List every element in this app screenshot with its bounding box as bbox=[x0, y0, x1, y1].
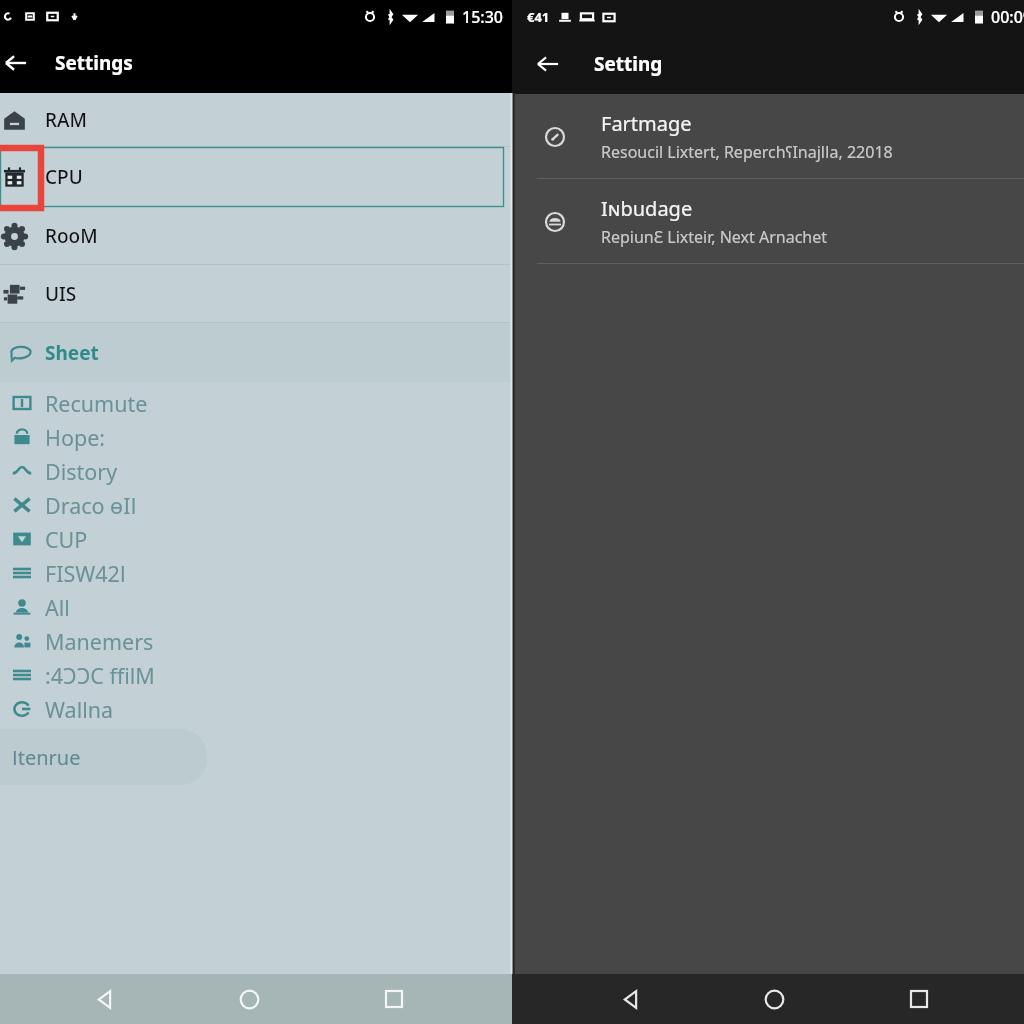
staticText: Sheet bbox=[45, 340, 99, 366]
staticText: CPU bbox=[45, 164, 83, 190]
staticText: Resoucil Lixtert, ReperchʕInajlІa, 22018 bbox=[601, 141, 893, 163]
button[interactable]: :4ƆƆC ffilM bbox=[0, 658, 512, 692]
staticText: Settings bbox=[55, 50, 133, 76]
button[interactable]: Fartmage bbox=[512, 94, 1024, 179]
button[interactable]: Manemers bbox=[0, 624, 512, 658]
staticText: 15:30 bbox=[462, 6, 503, 28]
staticText: Setting bbox=[594, 51, 663, 77]
staticText: Draco өIІ bbox=[45, 491, 137, 520]
staticText: Іtenrue bbox=[12, 744, 81, 771]
button[interactable]: Recents bbox=[899, 979, 939, 1019]
button[interactable]: Back bbox=[2, 49, 30, 77]
button[interactable]: All bbox=[0, 590, 512, 624]
button[interactable]: Wallna bbox=[0, 692, 512, 726]
staticText: Distory bbox=[45, 457, 118, 486]
button[interactable]: Back bbox=[611, 979, 651, 1019]
staticText: Wallna bbox=[45, 695, 114, 724]
button[interactable]: RooM bbox=[0, 207, 512, 265]
button[interactable]: Іtenrue bbox=[0, 729, 207, 785]
button[interactable]: Home bbox=[229, 979, 269, 1019]
staticText: FISW42І bbox=[45, 559, 126, 588]
button[interactable]: UIS bbox=[0, 265, 512, 323]
button[interactable]: RAM bbox=[0, 93, 512, 147]
staticText: €41 bbox=[527, 8, 550, 26]
button[interactable]: Home bbox=[754, 979, 794, 1019]
button[interactable]: Distory bbox=[0, 454, 512, 488]
staticText: RooM bbox=[45, 223, 98, 249]
button[interactable]: Draco өIІ bbox=[0, 488, 512, 522]
staticText: Manemers bbox=[45, 627, 154, 656]
staticText: RAM bbox=[45, 107, 87, 133]
button[interactable]: CPU bbox=[0, 147, 512, 207]
staticText: Hope: bbox=[45, 423, 106, 452]
button[interactable]: FISW42І bbox=[0, 556, 512, 590]
staticText: Recumute bbox=[45, 389, 148, 418]
button[interactable]: Back bbox=[534, 50, 562, 78]
staticText: CUP bbox=[45, 525, 88, 554]
button[interactable]: Sheet bbox=[0, 323, 512, 382]
staticText: UIS bbox=[45, 281, 77, 307]
button[interactable]: CUP bbox=[0, 522, 512, 556]
button[interactable]: Back bbox=[85, 979, 125, 1019]
staticText: All bbox=[45, 593, 70, 622]
button[interactable]: Hope: bbox=[0, 420, 512, 454]
staticText: :4ƆƆC ffilM bbox=[45, 661, 155, 690]
staticText: 00:09 bbox=[991, 6, 1024, 28]
staticText: Iɴbudage bbox=[601, 195, 693, 222]
staticText: Fartmage bbox=[601, 110, 692, 137]
button[interactable]: Recents bbox=[374, 979, 414, 1019]
button[interactable]: Iɴbudage bbox=[512, 179, 1024, 264]
staticText: RepiunƐ Lixteir, Next Arnachet bbox=[601, 226, 828, 248]
button[interactable]: Recumute bbox=[0, 386, 512, 420]
